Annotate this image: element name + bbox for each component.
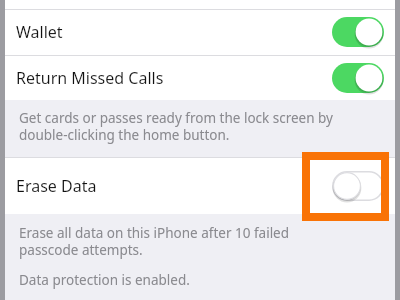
button[interactable]: Erase Data <box>5 157 395 214</box>
button[interactable]: Return Missed Calls <box>5 55 395 100</box>
staticText: Return Missed Calls <box>16 67 164 89</box>
staticText: Erase Data <box>16 175 97 197</box>
button[interactable]: Return Missed Calls <box>332 63 384 93</box>
button[interactable]: Wallet <box>332 17 384 47</box>
staticText: Data protection is enabled. <box>19 271 335 289</box>
staticText: Wallet <box>16 21 63 43</box>
staticText: Erase all data on this iPhone after 10 f… <box>19 224 335 259</box>
staticText: Get cards or passes ready from the lock … <box>19 109 335 144</box>
button[interactable]: Wallet <box>5 9 395 55</box>
button[interactable]: Erase Data <box>332 171 384 201</box>
